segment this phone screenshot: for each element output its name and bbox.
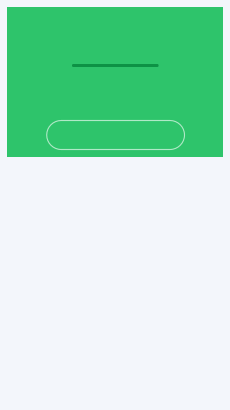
- button[interactable]: Continue: [45, 120, 184, 149]
